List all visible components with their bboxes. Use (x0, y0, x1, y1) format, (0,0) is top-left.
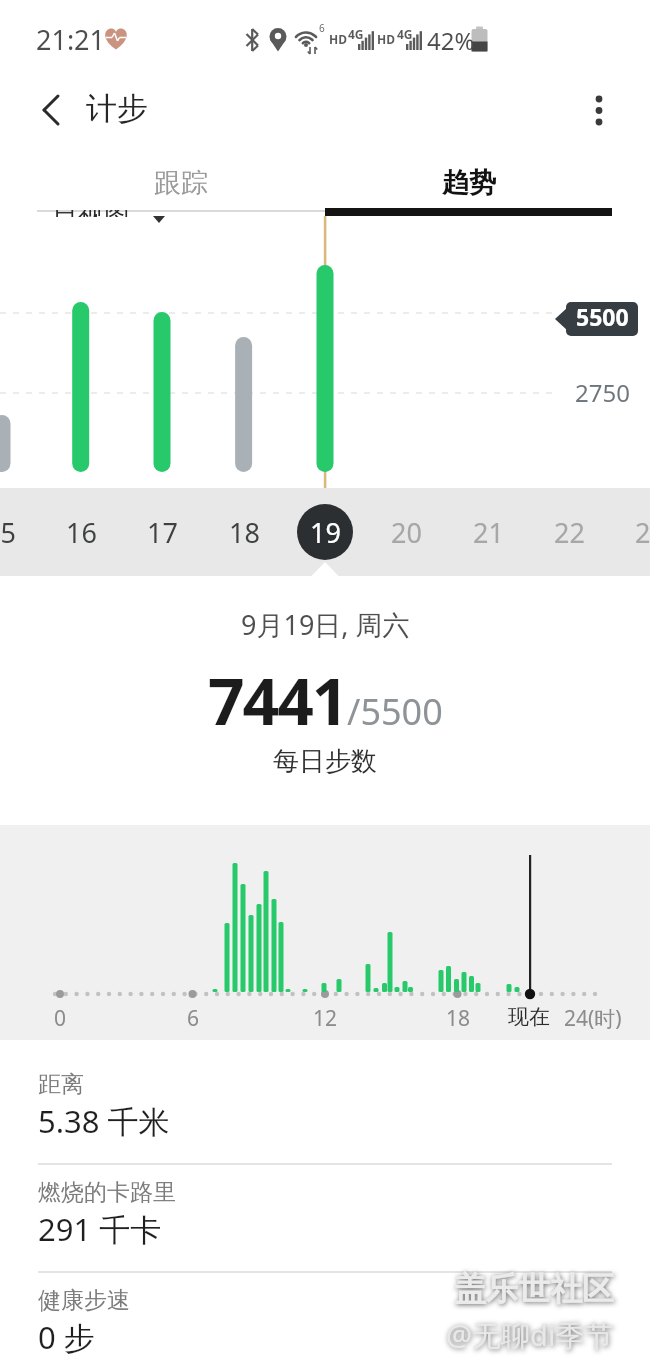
staticText: 15 (0, 514, 16, 551)
staticText: 现在 (508, 1004, 550, 1030)
staticText: 19 (310, 514, 341, 551)
staticText: 每日步数 (273, 745, 377, 778)
staticText: 距离 (38, 1070, 84, 1099)
button[interactable] (30, 85, 74, 135)
button[interactable]: 23 (610, 512, 650, 552)
staticText: 22 (554, 514, 585, 551)
staticText: 21:21 (36, 21, 106, 58)
staticText: HD (377, 31, 395, 47)
staticText: 21 (473, 514, 504, 551)
staticText: 5.38 千米 (38, 1100, 170, 1142)
staticText: 计步 (86, 89, 148, 128)
staticText: 24(时) (564, 1004, 622, 1033)
staticText: 4G (397, 26, 413, 42)
button[interactable] (0, 1166, 650, 1271)
button[interactable]: 15 (0, 512, 40, 552)
button[interactable]: 20 (366, 512, 446, 552)
staticText: 趋势 (442, 166, 496, 200)
staticText: 20 (391, 514, 422, 551)
staticText: /5500 (347, 687, 443, 736)
staticText: 跟踪 (154, 166, 208, 200)
staticText: 42% (427, 24, 475, 57)
button[interactable]: 日视图 (52, 210, 154, 229)
staticText: @无聊di季节 (446, 1315, 614, 1355)
button[interactable]: 16 (41, 512, 121, 552)
button[interactable] (0, 1056, 650, 1162)
staticText: 健康步速 (38, 1286, 130, 1315)
button[interactable]: 跟踪 (37, 155, 325, 210)
staticText: 18 (446, 1004, 471, 1033)
button[interactable] (0, 1274, 650, 1372)
staticText: 17 (147, 514, 178, 551)
staticText: 6 (319, 21, 325, 35)
staticText: 9月19日, 周六 (241, 606, 410, 643)
button[interactable]: 21 (448, 512, 528, 552)
button[interactable]: 22 (529, 512, 609, 552)
staticText: 12 (313, 1004, 338, 1033)
staticText: 4G (348, 26, 364, 42)
button[interactable]: 17 (122, 512, 202, 552)
staticText: 日视图 (52, 210, 130, 217)
staticText: 291 千卡 (38, 1208, 162, 1250)
staticText: 0 步 (38, 1316, 95, 1358)
button[interactable]: 趋势 (325, 155, 612, 210)
staticText: 2750 (575, 376, 630, 409)
staticText: 16 (66, 514, 97, 551)
staticText: 燃烧的卡路里 (38, 1178, 176, 1207)
staticText: 0 (54, 1004, 67, 1033)
button[interactable]: 19 (285, 512, 365, 552)
staticText: 18 (229, 514, 260, 551)
staticText: 23 (635, 514, 650, 551)
staticText: 6 (187, 1004, 200, 1033)
button[interactable]: 18 (204, 512, 284, 552)
staticText: 盖乐世社区 (454, 1269, 614, 1309)
staticText: 5500 (576, 301, 629, 332)
staticText: HD (329, 31, 347, 47)
staticText: 7441 (208, 657, 347, 744)
button[interactable] (580, 85, 620, 135)
